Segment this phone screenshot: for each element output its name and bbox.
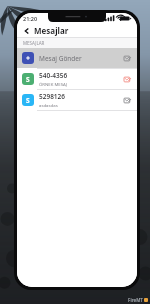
button[interactable]: Open message (122, 95, 132, 105)
staticText: Mesajlar (34, 25, 69, 36)
button[interactable]: Open message (122, 74, 132, 84)
staticText: 21:20 (23, 15, 38, 22)
staticText: asdasdas (39, 102, 58, 108)
button[interactable]: S (17, 90, 137, 110)
staticText: ÖRNEK MESAJ (39, 81, 68, 87)
staticText: S (26, 75, 30, 84)
button[interactable]: S (17, 69, 137, 89)
staticText: MESAJLAR (23, 40, 45, 46)
button[interactable]: Back (21, 25, 32, 36)
staticText: 540-4356 (39, 71, 68, 80)
button[interactable]: Open message (122, 53, 132, 63)
staticText: 5298126 (39, 92, 66, 101)
button[interactable]: Mesaj Gönder (17, 48, 137, 68)
staticText: Mesaj Gönder (39, 54, 82, 63)
staticText: FireMT (128, 297, 143, 303)
staticText: S (26, 96, 30, 105)
